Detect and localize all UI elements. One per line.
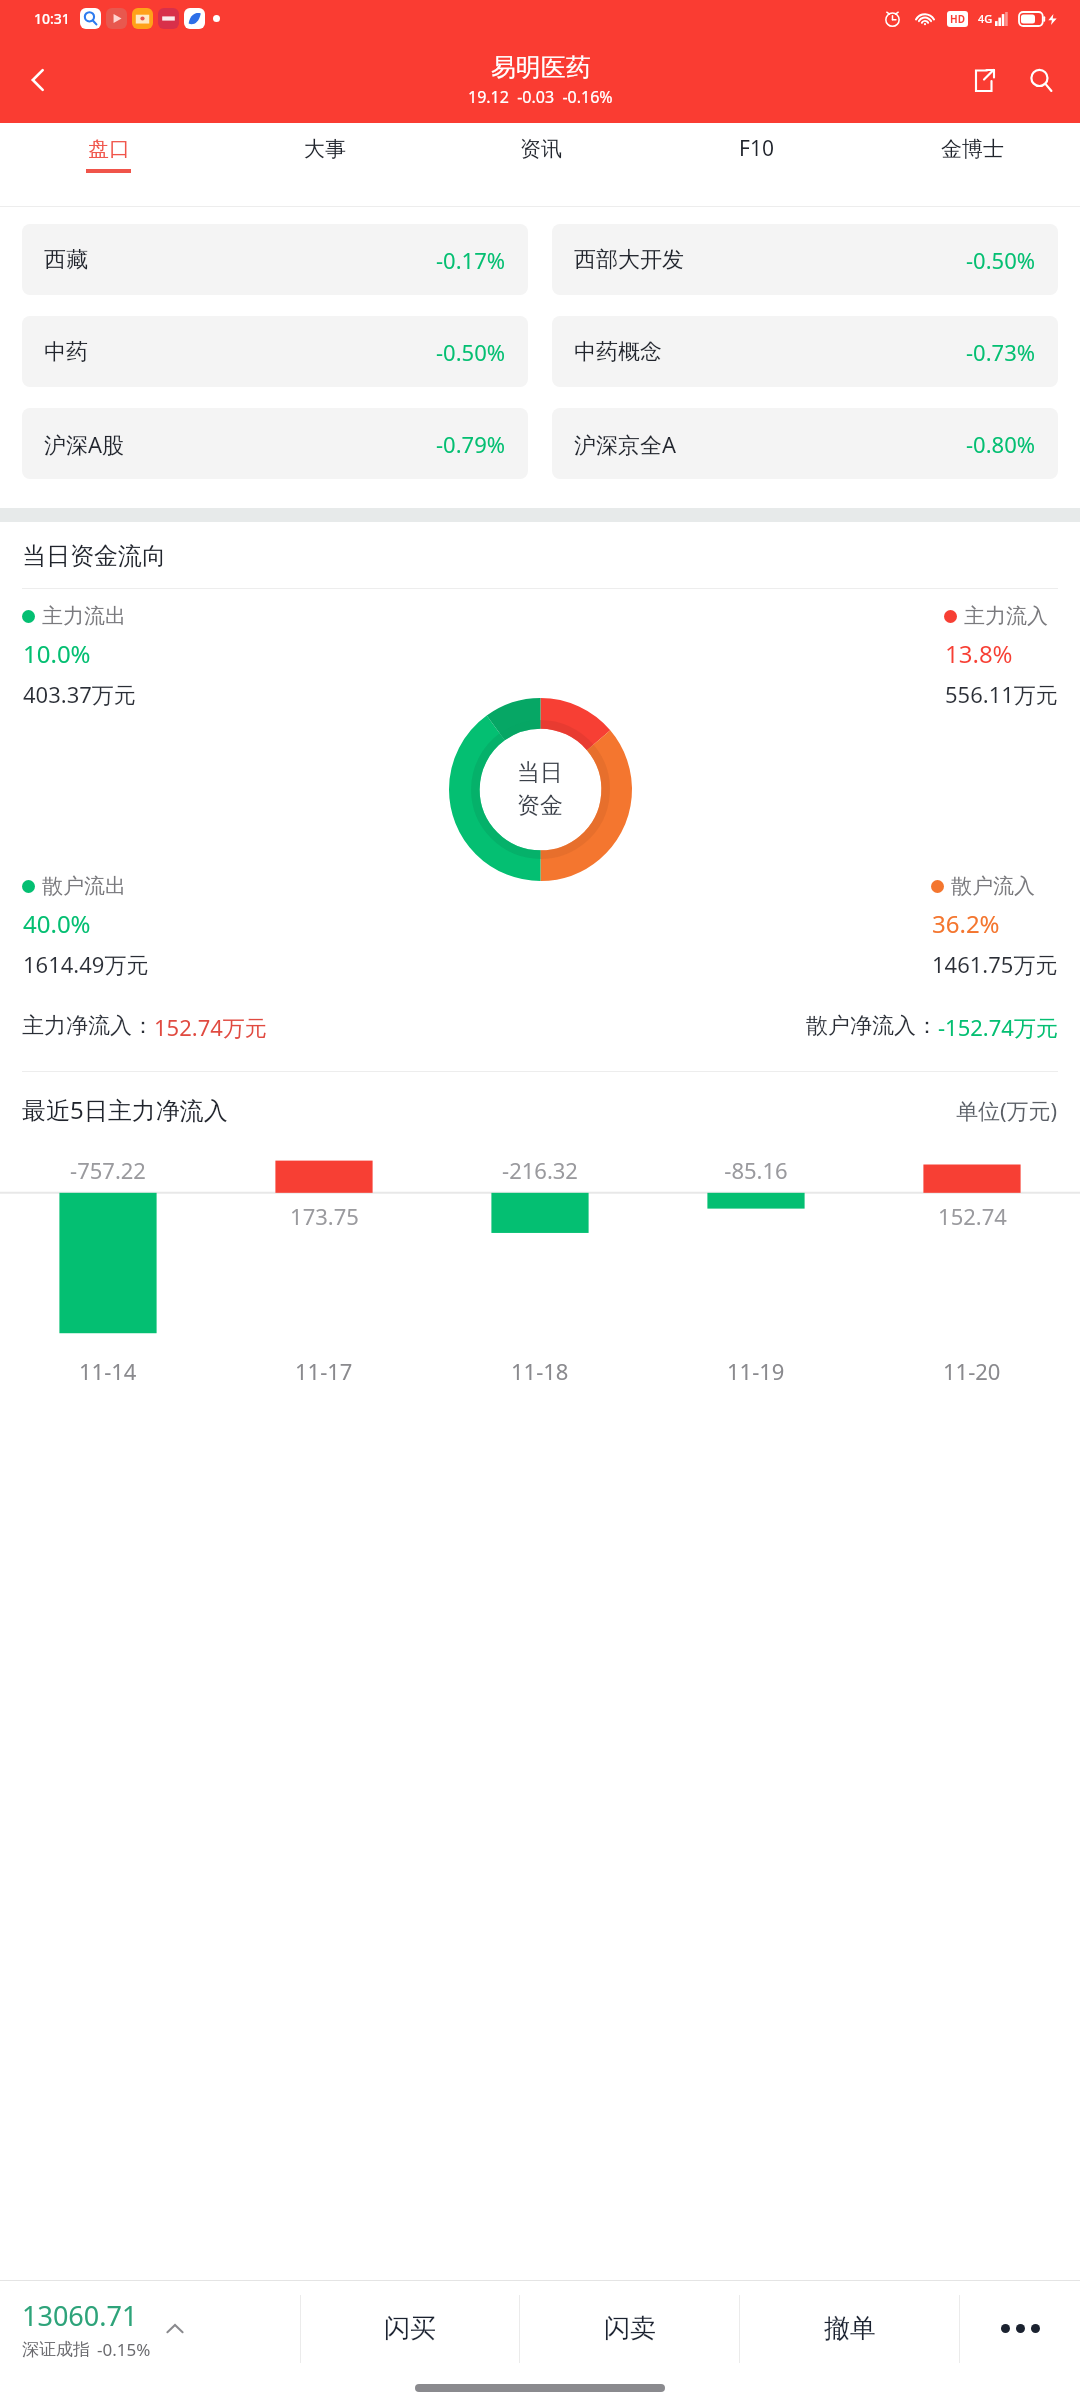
staticText: -0.80%	[966, 429, 1036, 459]
staticText: HD	[950, 12, 965, 26]
staticText: 11-14	[79, 1356, 137, 1386]
staticText: -757.22	[70, 1155, 146, 1185]
staticText: 主力流入	[964, 603, 1048, 629]
staticText: 深证成指	[22, 2339, 90, 2360]
button[interactable]: Share	[956, 53, 1010, 107]
staticText: 沪深A股	[44, 429, 125, 459]
staticText: -0.50%	[966, 245, 1036, 275]
staticText: 易明医药	[491, 52, 591, 83]
staticText: 金博士	[941, 136, 1004, 162]
staticText: 10.0%	[23, 637, 91, 670]
staticText: 10:31	[34, 9, 70, 28]
staticText: 152.74万元	[154, 1012, 267, 1042]
button[interactable]: Search	[1014, 53, 1068, 107]
staticText: 最近5日主力净流入	[22, 1093, 228, 1126]
button[interactable]: 沪深京全A	[552, 408, 1058, 479]
staticText: 40.0%	[23, 907, 91, 940]
staticText: 散户流出	[42, 873, 126, 899]
staticText: 173.75	[290, 1201, 359, 1231]
staticText: 主力流出	[42, 603, 126, 629]
staticText: 4G	[978, 11, 993, 26]
button[interactable]: 盘口	[0, 123, 216, 185]
button[interactable]: 西藏	[22, 224, 528, 295]
button[interactable]: 金博士	[864, 123, 1080, 185]
button[interactable]: 沪深A股	[22, 408, 528, 479]
button[interactable]: 撤单	[740, 2281, 959, 2376]
button[interactable]: 西部大开发	[552, 224, 1058, 295]
button[interactable]: Back	[10, 52, 66, 108]
button[interactable]: 中药概念	[552, 316, 1058, 387]
staticText: 1614.49万元	[23, 949, 149, 979]
staticText: 13.8%	[945, 637, 1013, 670]
staticText: 36.2%	[932, 907, 1000, 940]
button[interactable]: 中药	[22, 316, 528, 387]
staticText: 当日资金流向	[22, 541, 166, 571]
staticText: -152.74万元	[938, 1012, 1058, 1042]
staticText: 撤单	[824, 2312, 876, 2345]
button[interactable]: F10	[648, 123, 864, 185]
staticText: 主力净流入：	[22, 1012, 154, 1040]
staticText: 当日	[517, 758, 563, 787]
staticText: 大事	[304, 136, 346, 162]
staticText: 556.11万元	[945, 679, 1058, 709]
button[interactable]: 13060.71	[0, 2281, 300, 2376]
staticText: -0.79%	[436, 429, 506, 459]
staticText: -0.15%	[97, 2338, 151, 2361]
staticText: 沪深京全A	[574, 429, 677, 459]
staticText: 资金	[517, 791, 563, 820]
staticText: 西部大开发	[574, 246, 684, 274]
staticText: 11-19	[727, 1356, 785, 1386]
staticText: 资讯	[520, 136, 562, 162]
staticText: 11-18	[511, 1356, 569, 1386]
staticText: 13060.71	[22, 2297, 138, 2334]
staticText: 19.12 -0.03 -0.16%	[468, 86, 613, 108]
staticText: 散户流入	[951, 873, 1035, 899]
staticText: 403.37万元	[23, 679, 136, 709]
staticText: 1461.75万元	[932, 949, 1058, 979]
staticText: -0.17%	[436, 245, 506, 275]
staticText: 11-20	[943, 1356, 1001, 1386]
staticText: 中药概念	[574, 338, 662, 366]
staticText: 152.74	[938, 1201, 1007, 1231]
button[interactable]: 资讯	[432, 123, 648, 185]
staticText: -0.50%	[436, 337, 506, 367]
staticText: -85.16	[724, 1155, 788, 1185]
button[interactable]: 闪卖	[520, 2281, 739, 2376]
button[interactable]: More	[960, 2281, 1080, 2376]
staticText: 西藏	[44, 246, 88, 274]
button[interactable]: 大事	[216, 123, 432, 185]
staticText: 盘口	[88, 136, 130, 162]
staticText: -0.73%	[966, 337, 1036, 367]
staticText: 单位(万元)	[956, 1095, 1058, 1125]
staticText: 11-17	[295, 1356, 353, 1386]
staticText: 闪卖	[604, 2312, 656, 2345]
staticText: 中药	[44, 338, 88, 366]
staticText: -216.32	[502, 1155, 578, 1185]
button[interactable]: 闪买	[301, 2281, 519, 2376]
staticText: 闪买	[384, 2312, 436, 2345]
staticText: F10	[739, 134, 774, 163]
staticText: 散户净流入：	[806, 1012, 938, 1040]
